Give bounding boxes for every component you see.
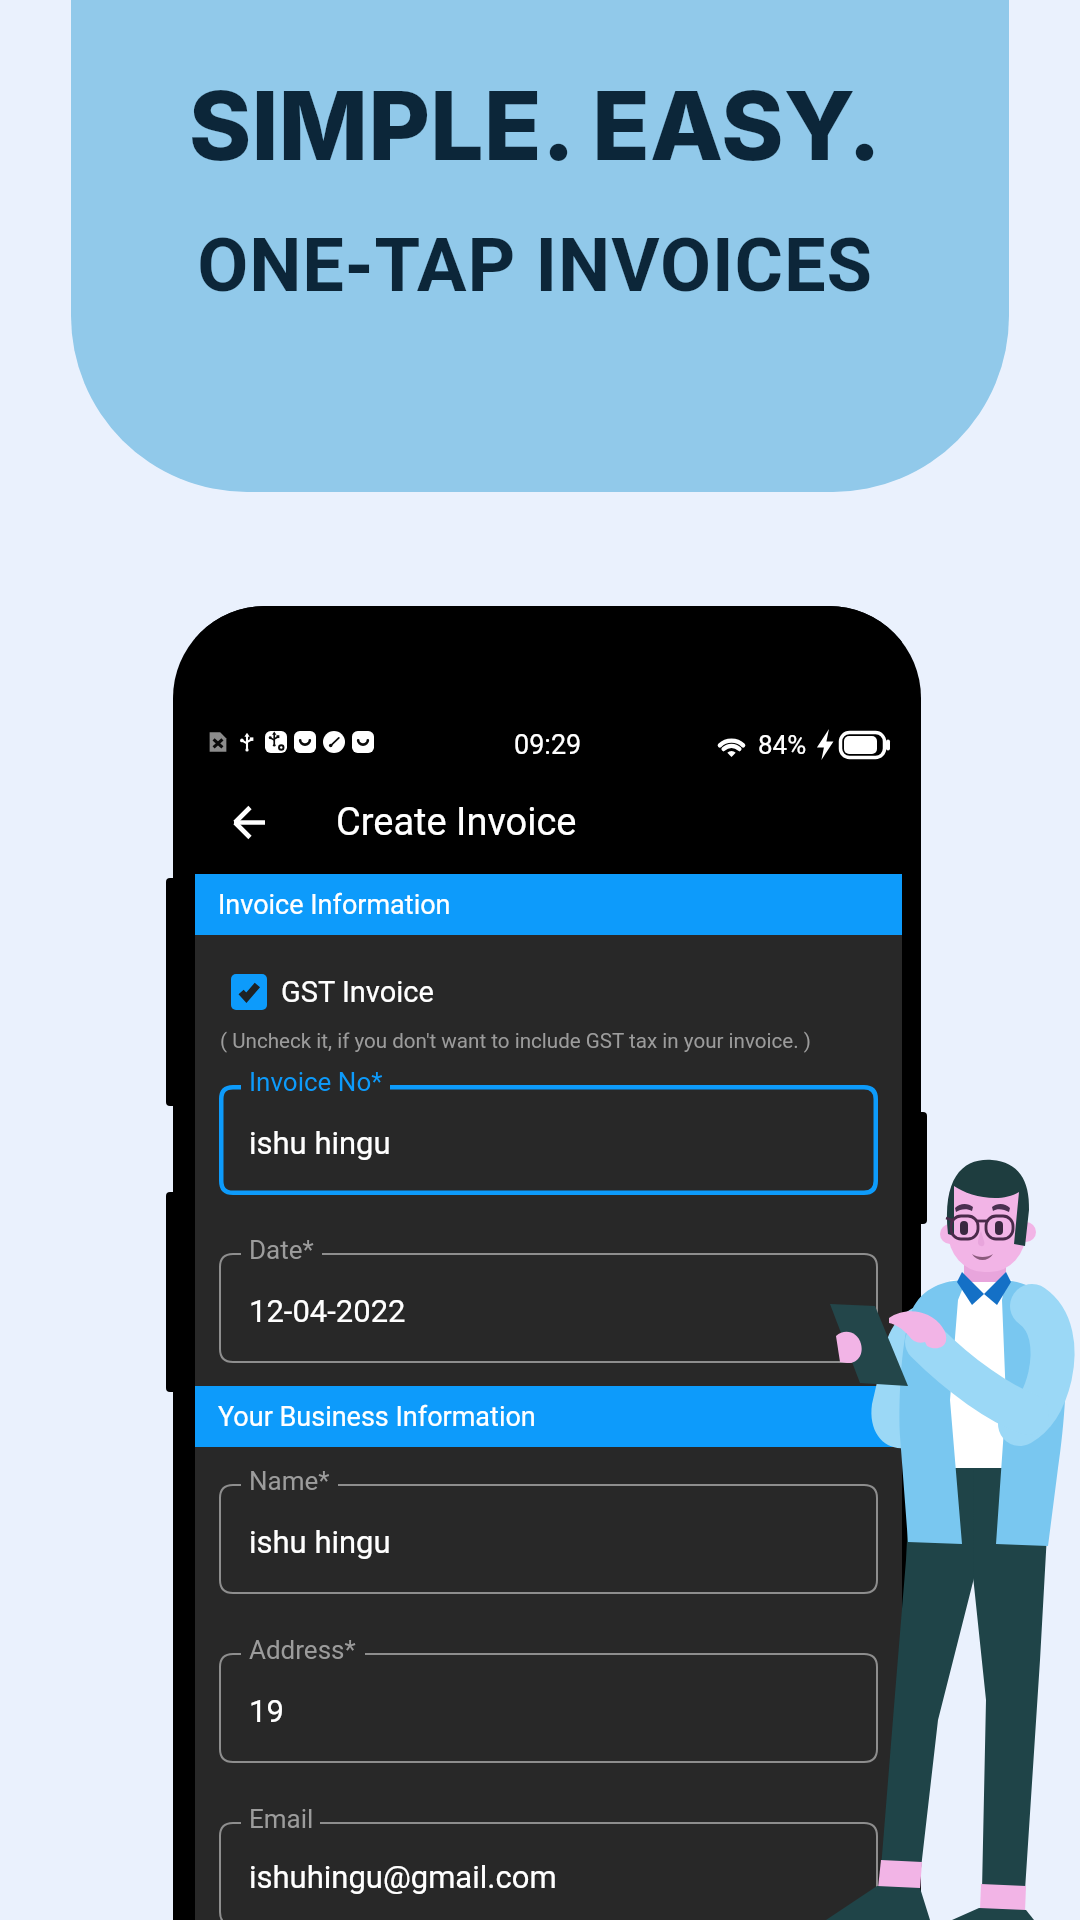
button[interactable]: Invoice Information [195,874,902,935]
staticText: Create Invoice [336,800,577,845]
staticText: 12-04-2022 [249,1293,406,1329]
staticText: ( Uncheck it, if you don't want to inclu… [220,1029,811,1053]
staticText: ONE-TAP INVOICES [0,222,1075,309]
button[interactable]: ishu hingu [219,1484,878,1594]
button[interactable]: Your Business Information [195,1386,902,1447]
staticText: Your Business Information [218,1401,536,1433]
staticText: Invoice Information [218,889,451,921]
staticText: Address* [249,1635,356,1665]
staticText: 09:29 [514,729,582,761]
staticText: Email [249,1804,314,1834]
button[interactable]: Back [215,788,283,856]
button[interactable]: ishuhingu@gmail.com [219,1822,878,1920]
staticText: Invoice No* [249,1067,383,1097]
button[interactable]: GST Invoice [231,974,902,1010]
staticText: Name* [249,1466,330,1496]
staticText: GST Invoice [281,975,434,1009]
staticText: ishu hingu [249,1524,391,1560]
button[interactable]: 12-04-2022 [219,1253,878,1363]
staticText: Date* [249,1235,314,1265]
button[interactable]: ishu hingu [219,1085,878,1195]
staticText: 19 [249,1693,284,1729]
staticText: ishu hingu [249,1125,391,1161]
button[interactable]: 19 [219,1653,878,1763]
staticText: 84% [758,730,807,760]
staticText: ishuhingu@gmail.com [249,1859,557,1895]
staticText: SIMPLE. EASY. [0,68,1075,183]
